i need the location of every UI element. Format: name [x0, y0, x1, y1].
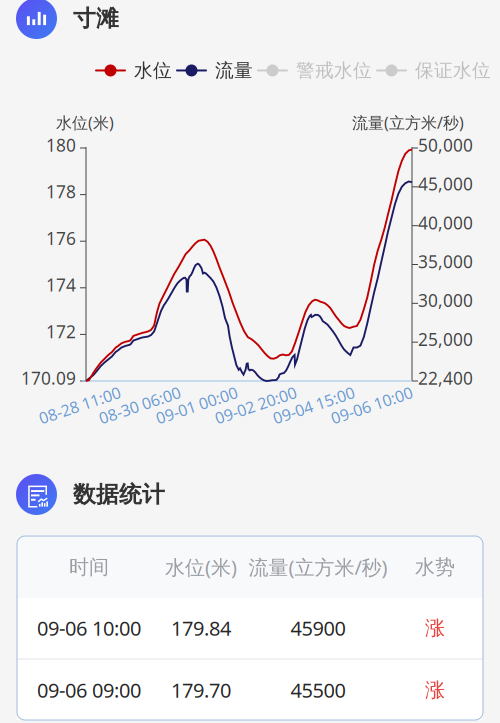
staticText: 09-02 20:00 [213, 393, 298, 415]
staticText: 174 [46, 273, 76, 296]
staticText: 水位(米) [165, 554, 237, 580]
staticText: 45500 [290, 677, 345, 703]
staticText: 警戒水位 [296, 59, 372, 82]
staticText: 176 [46, 227, 76, 250]
staticText: 流量 [215, 59, 253, 82]
staticText: 流量(立方米/秒) [352, 112, 464, 133]
staticText: 178 [46, 180, 76, 203]
staticText: 170.09 [21, 366, 76, 389]
button[interactable]: 警戒水位 [257, 59, 372, 82]
staticText: 172 [46, 320, 76, 343]
staticText: 流量(立方米/秒) [248, 554, 387, 580]
staticText: 09-06 10:00 [329, 393, 414, 415]
button[interactable]: 09-06 09:00 [17, 660, 483, 720]
staticText: 45900 [290, 615, 345, 641]
staticText: 40,000 [418, 211, 473, 234]
staticText: 09-04 15:00 [271, 393, 356, 415]
staticText: 22,400 [418, 366, 473, 389]
staticText: 09-06 09:00 [37, 677, 141, 703]
staticText: 水位(米) [56, 112, 114, 133]
staticText: 09-06 10:00 [37, 615, 141, 641]
staticText: 水势 [415, 555, 455, 579]
button[interactable]: 流量 [176, 59, 253, 82]
staticText: 25,000 [418, 328, 473, 351]
staticText: 保证水位 [415, 59, 491, 82]
staticText: 179.70 [171, 677, 231, 703]
staticText: 08-30 06:00 [97, 393, 182, 415]
staticText: 45,000 [418, 172, 473, 195]
staticText: 涨 [425, 616, 445, 640]
button[interactable]: 09-06 10:00 [17, 598, 483, 658]
staticText: 30,000 [418, 289, 473, 312]
staticText: 179.84 [171, 615, 231, 641]
staticText: 180 [46, 133, 76, 156]
staticText: 寸滩 [73, 5, 119, 32]
staticText: 09-01 00:00 [154, 393, 239, 415]
staticText: 涨 [425, 678, 445, 702]
button[interactable]: 水位 [95, 59, 172, 82]
staticText: 35,000 [418, 250, 473, 273]
staticText: 数据统计 [73, 481, 165, 508]
staticText: 08-28 11:00 [37, 393, 122, 415]
button[interactable]: 保证水位 [376, 59, 491, 82]
staticText: 水位 [134, 59, 172, 82]
staticText: 时间 [69, 555, 109, 579]
staticText: 50,000 [418, 133, 473, 156]
